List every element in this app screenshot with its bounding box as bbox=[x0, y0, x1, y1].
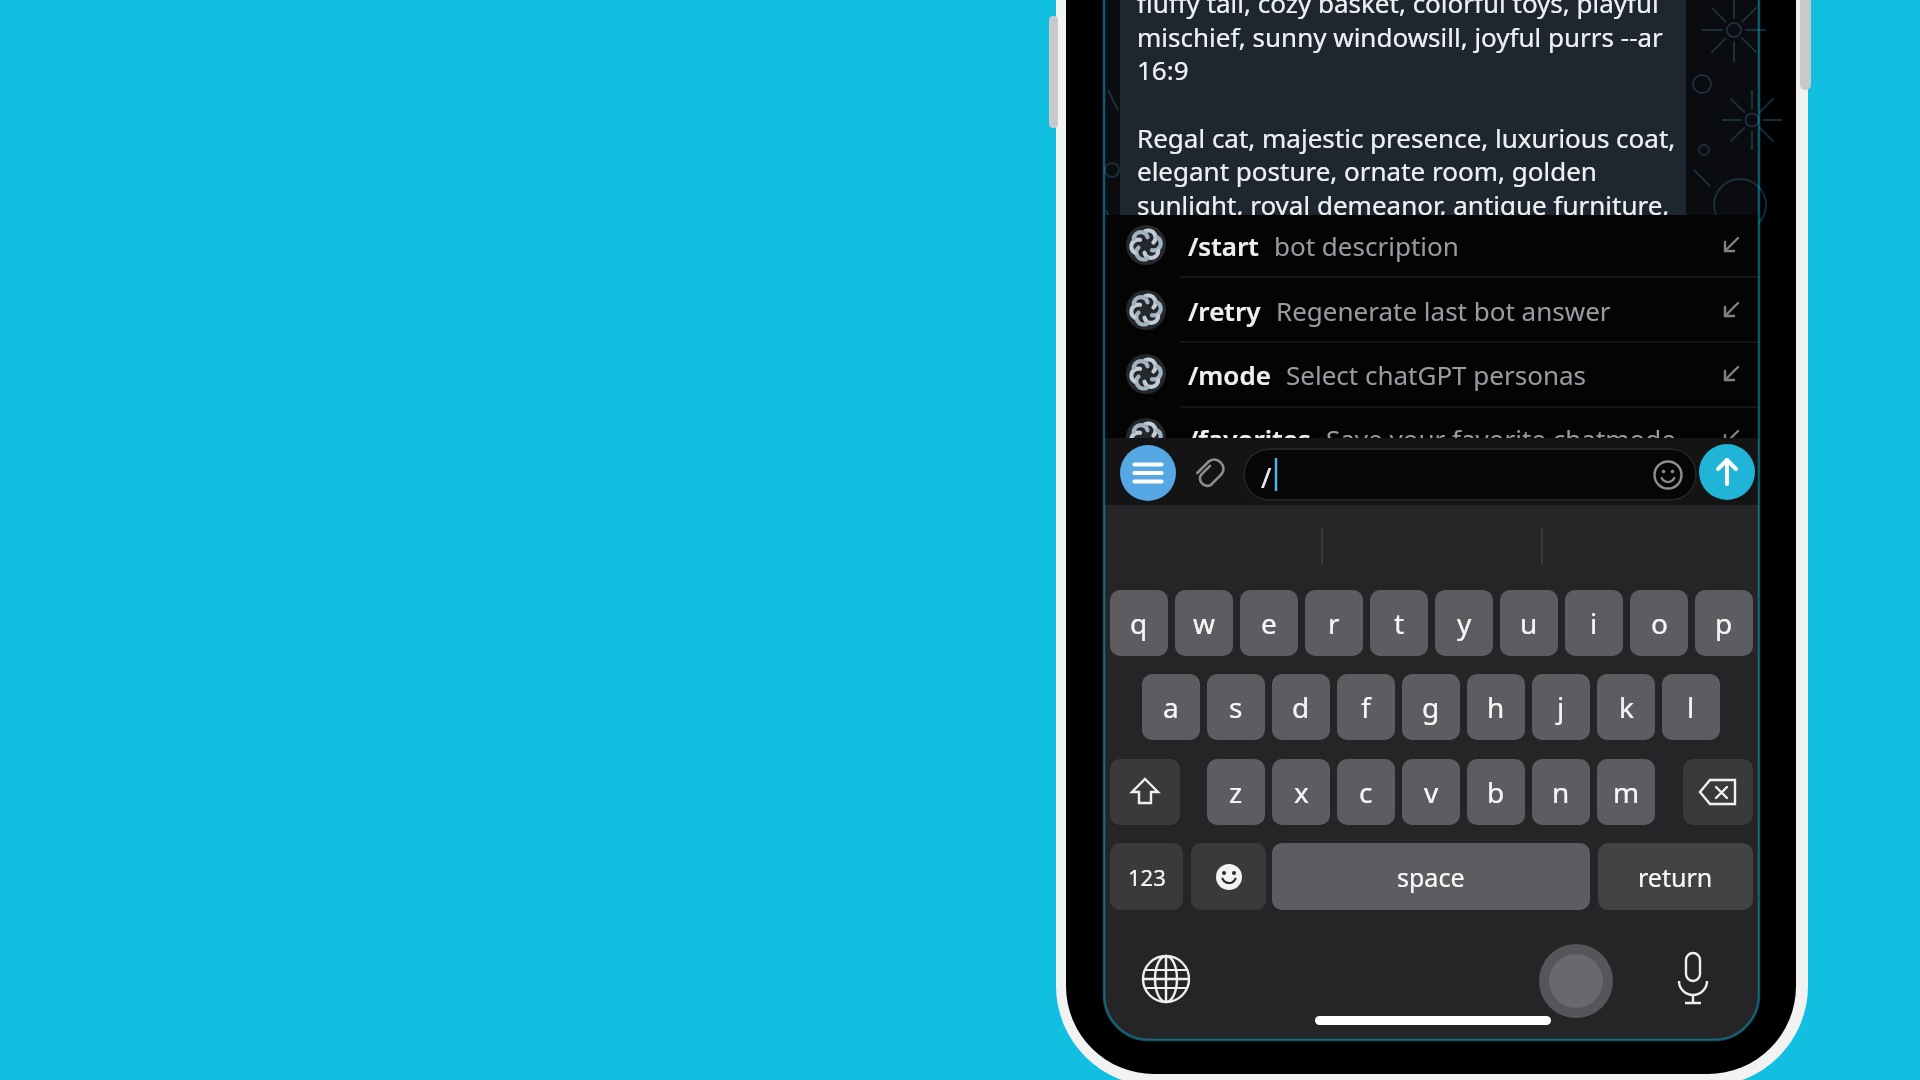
staticText: 123 bbox=[1128, 862, 1166, 892]
staticText: h bbox=[1487, 688, 1505, 726]
staticText: a bbox=[1163, 688, 1179, 726]
staticText: t bbox=[1394, 604, 1405, 642]
staticText: v bbox=[1424, 773, 1439, 811]
button[interactable]: b bbox=[1467, 759, 1525, 825]
staticText: b bbox=[1487, 773, 1505, 811]
staticText: 16:9 bbox=[1137, 52, 1189, 87]
button[interactable]: g bbox=[1402, 674, 1460, 740]
button[interactable]: d bbox=[1272, 674, 1330, 740]
staticText: j bbox=[1557, 688, 1565, 726]
staticText: w bbox=[1193, 604, 1216, 642]
button[interactable]: h bbox=[1467, 674, 1525, 740]
staticText: y bbox=[1457, 604, 1472, 642]
button[interactable]: 123 bbox=[1110, 843, 1183, 910]
button[interactable]: z bbox=[1207, 759, 1265, 825]
staticText: s bbox=[1229, 688, 1243, 726]
button[interactable]: space bbox=[1272, 843, 1590, 910]
staticText: i bbox=[1590, 604, 1598, 642]
staticText: sunlight, royal demeanor, antique furnit… bbox=[1137, 187, 1670, 222]
staticText: fluffy tail, cozy basket, colorful toys,… bbox=[1137, 0, 1659, 20]
staticText: r bbox=[1328, 604, 1340, 642]
button[interactable]: k bbox=[1597, 674, 1655, 740]
staticText: p bbox=[1715, 604, 1733, 642]
button[interactable] bbox=[1120, 445, 1176, 501]
button[interactable]: x bbox=[1272, 759, 1330, 825]
button[interactable] bbox=[1683, 759, 1753, 825]
button[interactable]: q bbox=[1110, 590, 1168, 656]
staticText: /favorites bbox=[1188, 421, 1311, 456]
button[interactable]: l bbox=[1662, 674, 1720, 740]
button[interactable]: e bbox=[1240, 590, 1298, 656]
button[interactable]: j bbox=[1532, 674, 1590, 740]
staticText: bot description bbox=[1274, 228, 1459, 263]
staticText: /retry bbox=[1188, 293, 1261, 328]
button[interactable]: f bbox=[1337, 674, 1395, 740]
button[interactable]: v bbox=[1402, 759, 1460, 825]
button[interactable]: u bbox=[1500, 590, 1558, 656]
button[interactable]: c bbox=[1337, 759, 1395, 825]
button[interactable]: a bbox=[1142, 674, 1200, 740]
staticText: elegant posture, ornate room, golden bbox=[1137, 153, 1597, 188]
staticText: k bbox=[1619, 688, 1634, 726]
staticText: Regal cat, majestic presence, luxurious … bbox=[1137, 120, 1676, 155]
button[interactable] bbox=[1699, 444, 1755, 500]
button[interactable] bbox=[1191, 843, 1266, 910]
staticText: f bbox=[1361, 688, 1371, 726]
button[interactable]: r bbox=[1305, 590, 1363, 656]
staticText: Select chatGPT personas bbox=[1286, 357, 1587, 392]
button[interactable] bbox=[1110, 759, 1180, 825]
button[interactable] bbox=[1192, 456, 1228, 490]
button[interactable] bbox=[1104, 278, 1759, 342]
button[interactable]: s bbox=[1207, 674, 1265, 740]
staticText: d bbox=[1292, 688, 1310, 726]
button[interactable] bbox=[1104, 213, 1759, 277]
button[interactable] bbox=[1653, 460, 1683, 490]
staticText: space bbox=[1397, 860, 1465, 894]
staticText: z bbox=[1229, 773, 1243, 811]
button[interactable]: i bbox=[1565, 590, 1623, 656]
staticText: u bbox=[1520, 604, 1538, 642]
button[interactable]: n bbox=[1532, 759, 1590, 825]
staticText: o bbox=[1651, 604, 1668, 642]
staticText: /mode bbox=[1188, 357, 1271, 392]
staticText: /start bbox=[1188, 228, 1259, 263]
staticText: mischief, sunny windowsill, joyful purrs… bbox=[1137, 19, 1663, 54]
staticText: Regenerate last bot answer bbox=[1276, 293, 1611, 328]
button[interactable]: y bbox=[1435, 590, 1493, 656]
button[interactable]: w bbox=[1175, 590, 1233, 656]
staticText: m bbox=[1613, 773, 1640, 811]
button[interactable]: / bbox=[1243, 448, 1697, 501]
staticText: g bbox=[1422, 688, 1440, 726]
staticText: e bbox=[1261, 604, 1277, 642]
button[interactable]: m bbox=[1597, 759, 1655, 825]
staticText: / bbox=[1261, 458, 1272, 496]
button[interactable]: p bbox=[1695, 590, 1753, 656]
staticText: l bbox=[1687, 688, 1695, 726]
button[interactable]: t bbox=[1370, 590, 1428, 656]
staticText: x bbox=[1294, 773, 1309, 811]
button[interactable]: o bbox=[1630, 590, 1688, 656]
staticText: c bbox=[1359, 773, 1373, 811]
staticText: return bbox=[1638, 860, 1713, 894]
button[interactable]: return bbox=[1598, 843, 1753, 910]
button[interactable] bbox=[1104, 342, 1759, 406]
button[interactable] bbox=[1104, 406, 1759, 470]
staticText: q bbox=[1130, 604, 1148, 642]
staticText: Save your favorite chatmode bbox=[1326, 421, 1676, 456]
staticText: n bbox=[1552, 773, 1570, 811]
